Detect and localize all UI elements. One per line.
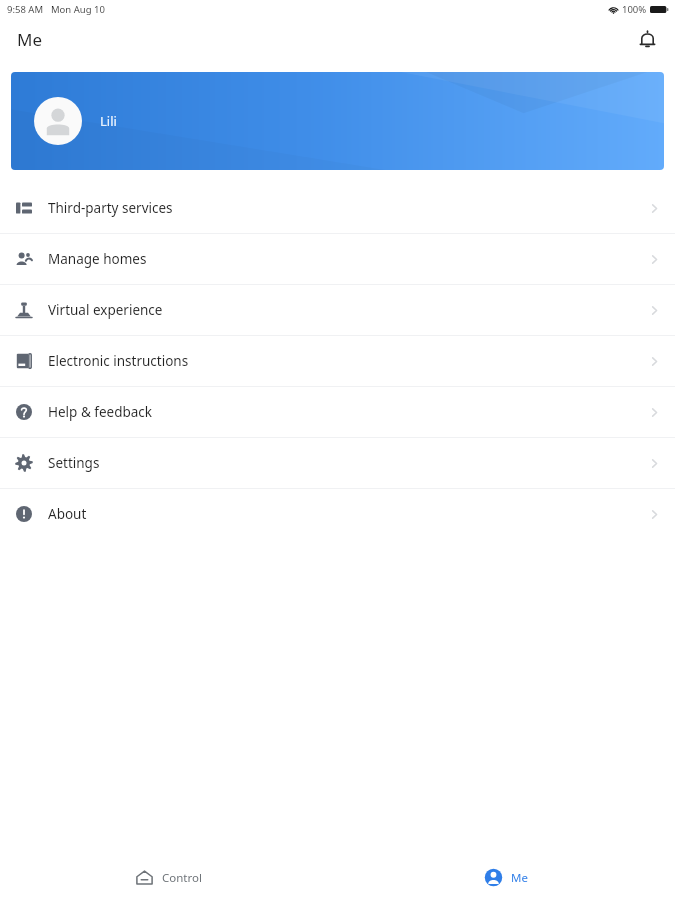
button[interactable]: Notifications [627,19,667,59]
staticText: 9:58 AM [7,3,44,16]
staticText: Control [162,870,202,886]
button[interactable]: Third-party services [0,183,675,233]
button[interactable]: About [0,489,675,539]
button[interactable]: Virtual experience [0,285,675,335]
staticText: About [48,505,87,523]
button[interactable]: Me [337,854,675,900]
staticText: Third-party services [48,199,173,217]
staticText: Lili [100,112,117,130]
button[interactable]: Lili [11,72,664,170]
staticText: Help & feedback [48,403,153,421]
button[interactable]: Control [0,854,337,900]
staticText: Manage homes [48,250,147,268]
button[interactable]: Electronic instructions [0,336,675,386]
staticText: 100% [622,3,647,16]
staticText: Settings [48,454,100,472]
staticText: Mon Aug 10 [51,3,105,16]
staticText: Electronic instructions [48,352,189,370]
staticText: Me [17,28,43,51]
staticText: Virtual experience [48,301,163,319]
button[interactable]: Manage homes [0,234,675,284]
staticText: Me [511,870,528,886]
button[interactable]: Help & feedback [0,387,675,437]
button[interactable]: Settings [0,438,675,488]
